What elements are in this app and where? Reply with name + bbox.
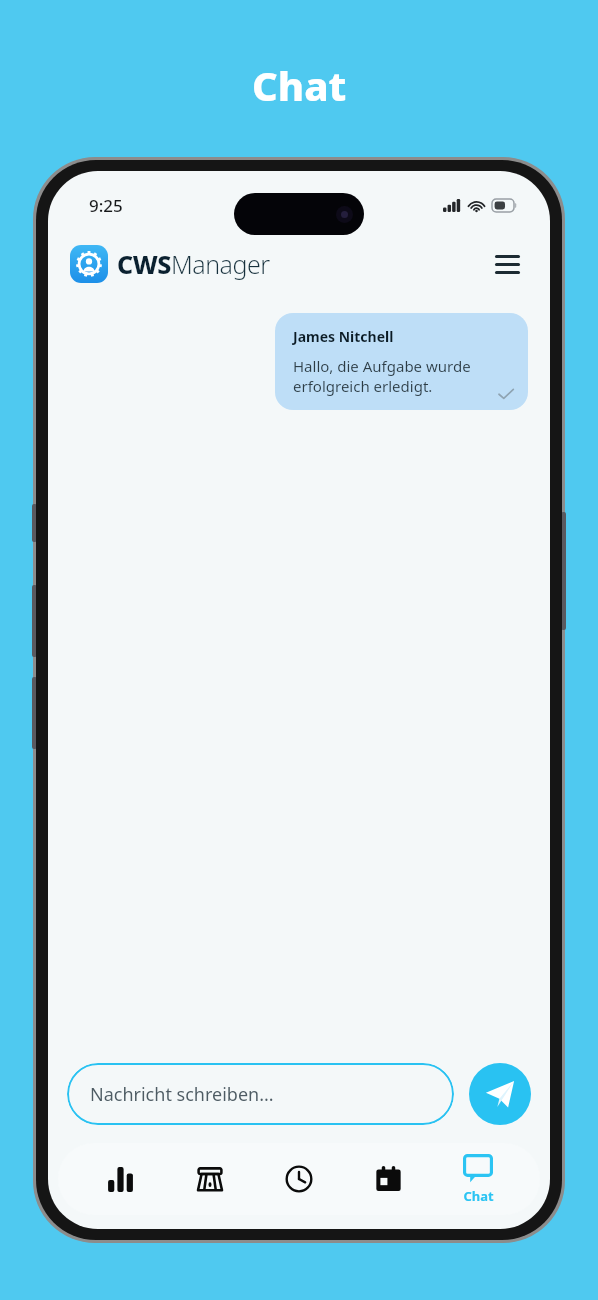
button[interactable]: Send message xyxy=(469,1063,531,1125)
button[interactable]: Nachricht schreiben... xyxy=(67,1063,454,1125)
staticText: Hallo, die Aufgabe wurde erfolgreich erl… xyxy=(293,356,471,396)
staticText: Manager xyxy=(171,247,270,281)
staticText: James Nitchell xyxy=(293,327,394,346)
button[interactable]: Calendar xyxy=(355,1143,421,1215)
staticText: 9:25 xyxy=(89,194,123,217)
staticText: Chat xyxy=(463,1187,494,1205)
button[interactable]: History xyxy=(266,1143,332,1215)
staticText: Chat xyxy=(252,58,347,112)
button[interactable]: Terminal xyxy=(177,1143,243,1215)
button[interactable]: James Nitchell xyxy=(275,313,528,410)
button[interactable]: Menu xyxy=(490,247,524,281)
button[interactable]: Chat xyxy=(445,1143,511,1215)
button[interactable]: Statistics xyxy=(87,1143,153,1215)
staticText: Nachricht schreiben... xyxy=(90,1082,274,1107)
staticText: CWS xyxy=(117,247,171,281)
